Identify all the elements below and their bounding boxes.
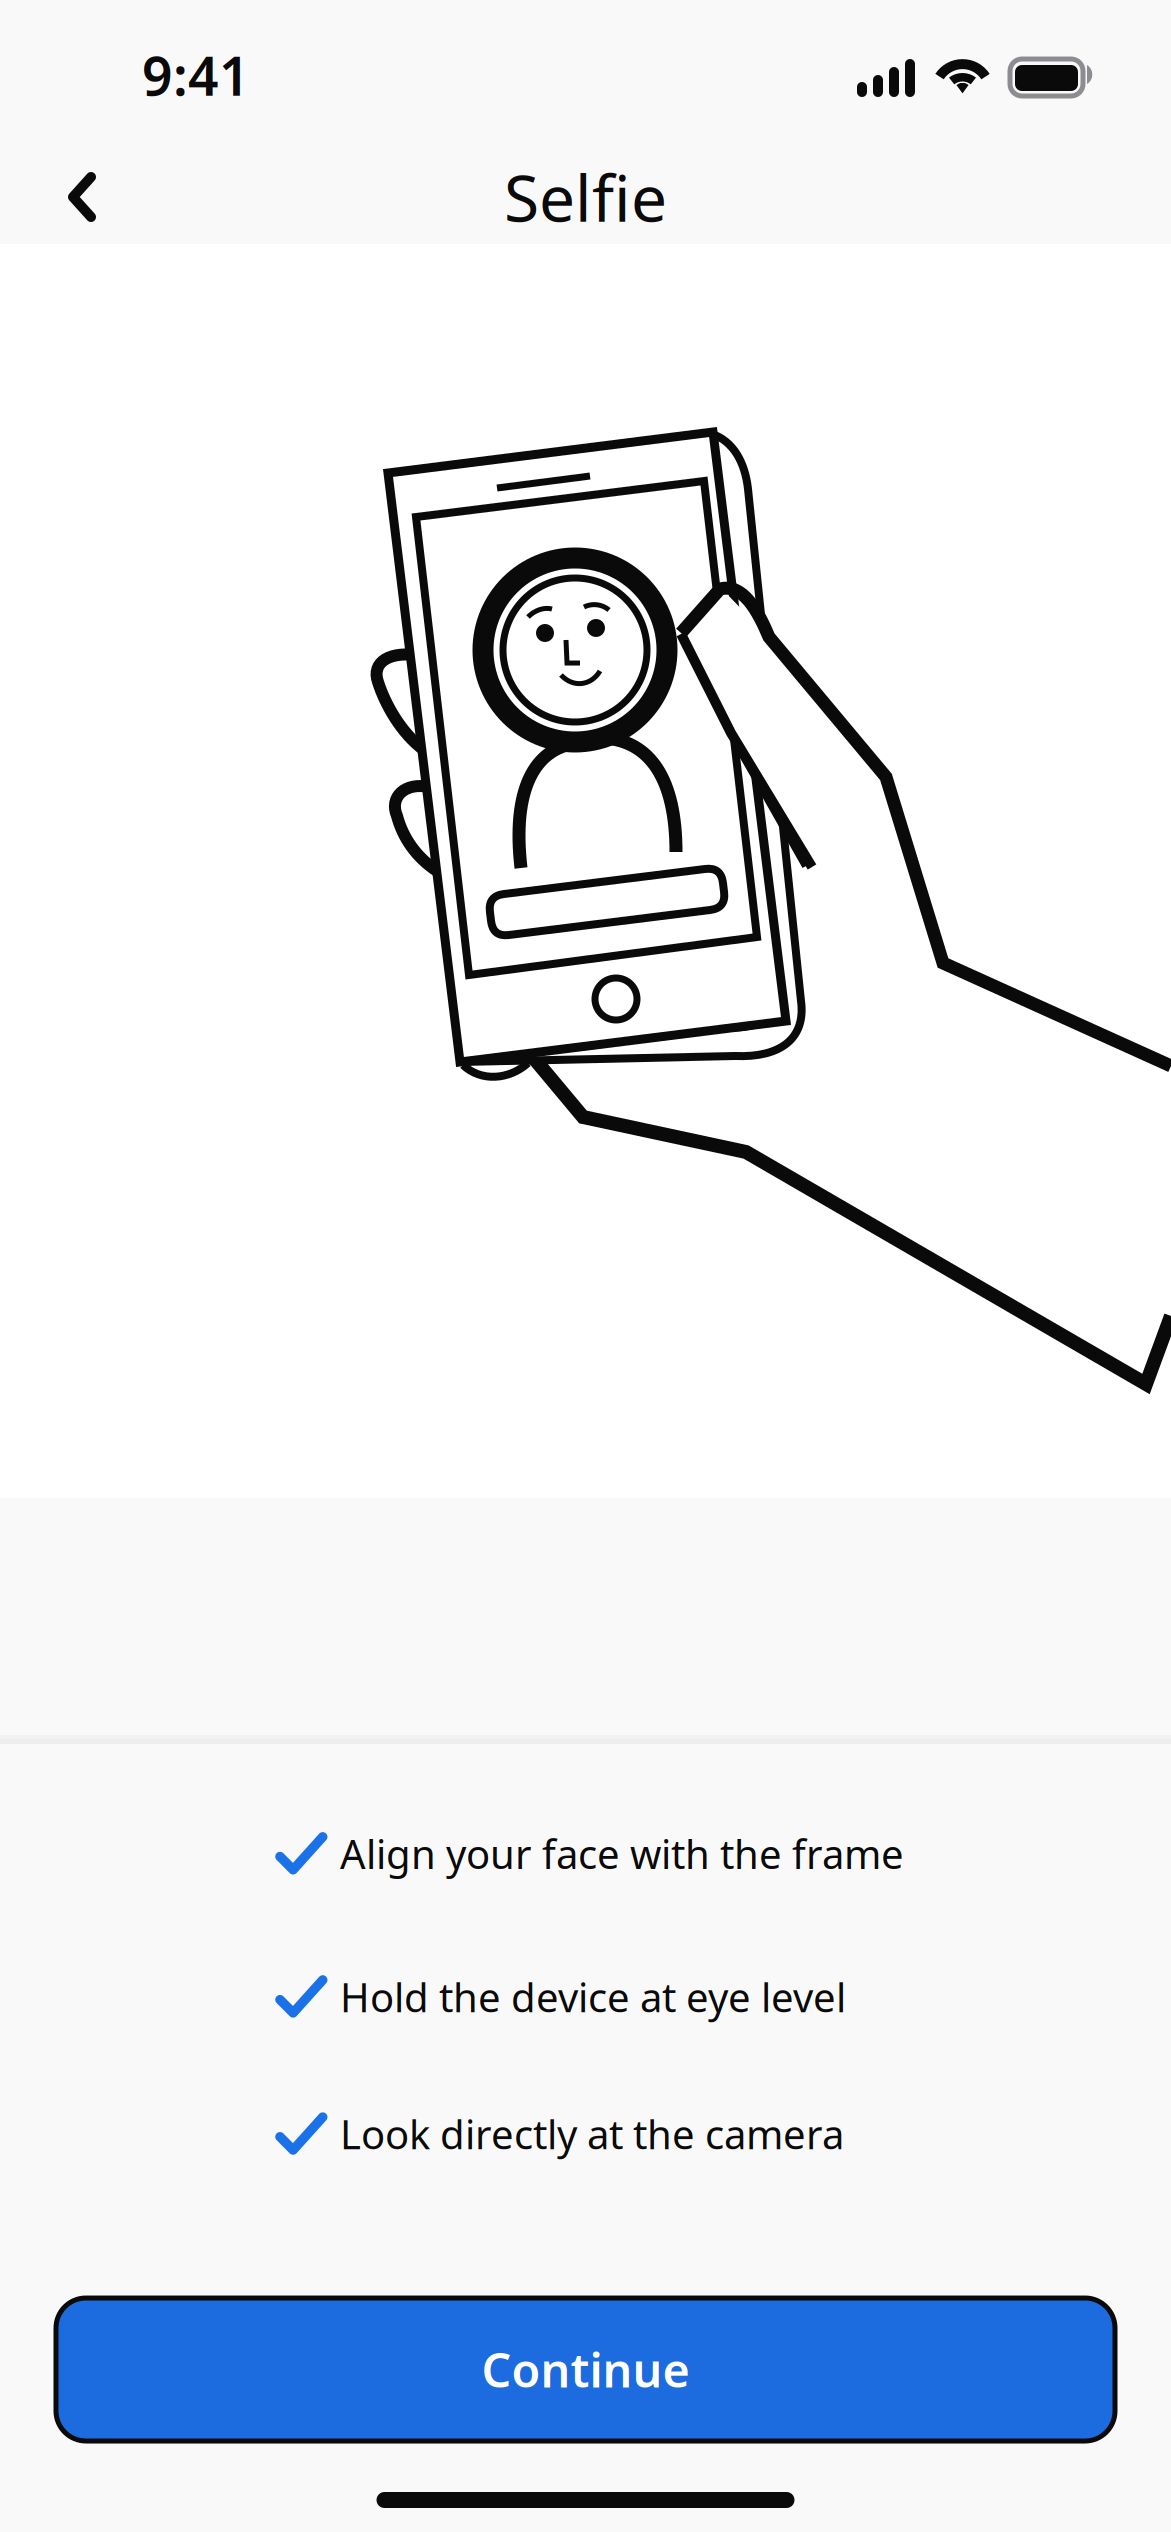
button[interactable]: Continue [56, 2298, 1115, 2441]
staticText: Selfie [504, 154, 667, 239]
button[interactable]: Back [35, 150, 129, 244]
staticText: Align your face with the frame [340, 1827, 904, 1880]
staticText: 9:41 [142, 40, 250, 110]
staticText: Hold the device at eye level [340, 1970, 846, 2023]
staticText: Look directly at the camera [340, 2107, 844, 2160]
staticText: Continue [481, 2338, 689, 2400]
